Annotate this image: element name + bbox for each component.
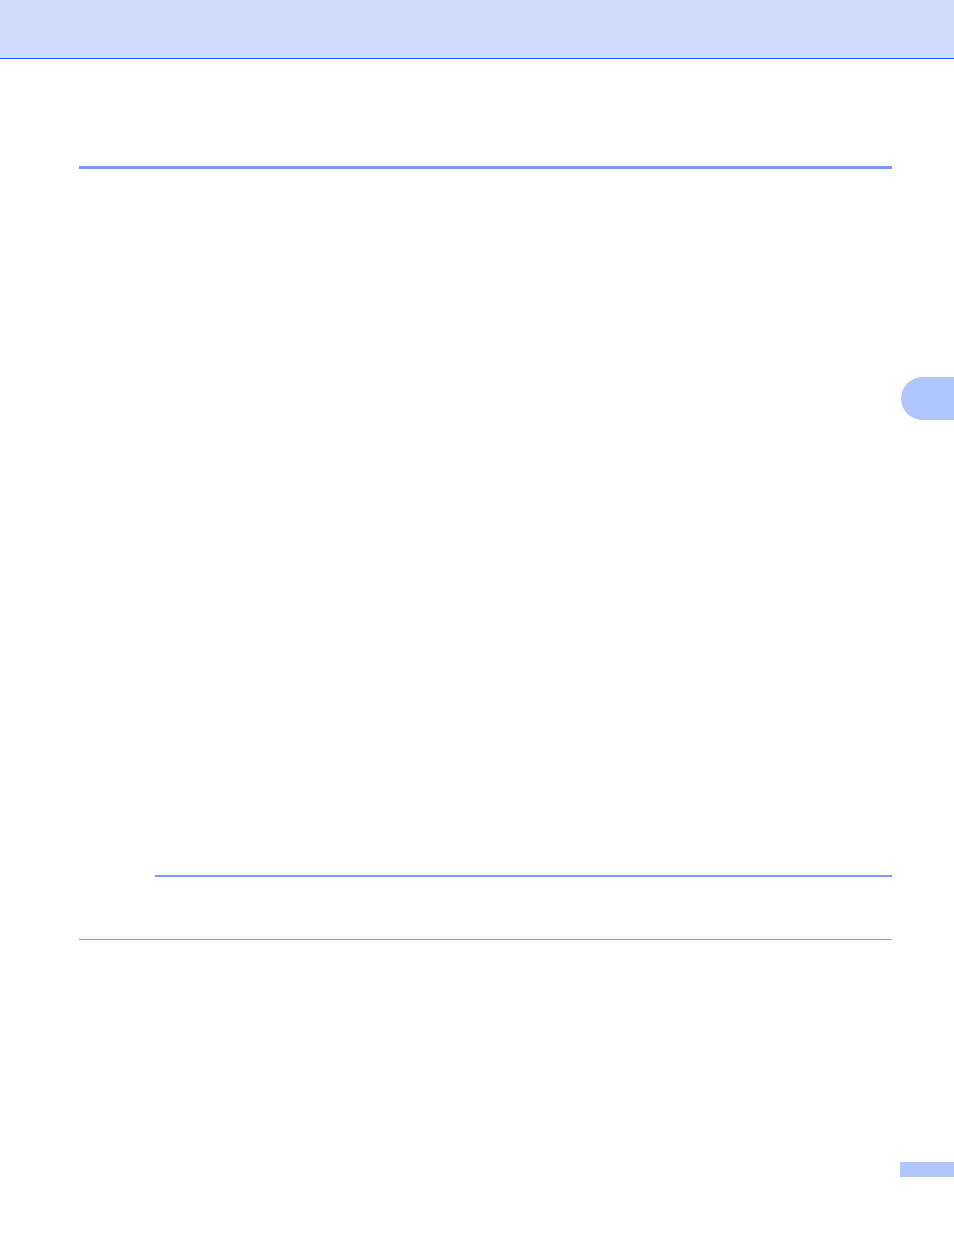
button[interactable]: Scroll to section bbox=[901, 377, 954, 420]
